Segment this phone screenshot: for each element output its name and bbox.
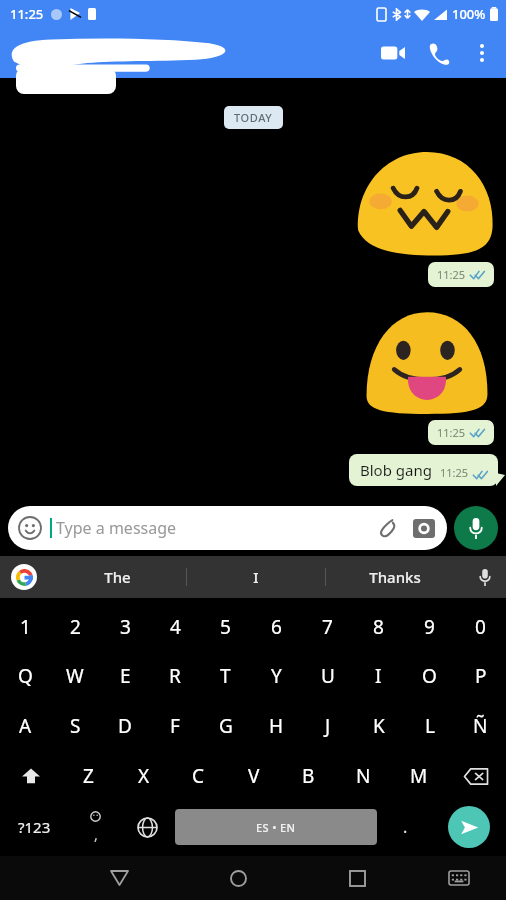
button[interactable]: P bbox=[455, 651, 506, 701]
button[interactable]: X bbox=[116, 751, 171, 801]
staticText: Type a message bbox=[56, 517, 177, 539]
staticText: T bbox=[220, 663, 231, 689]
staticText: I bbox=[375, 663, 382, 689]
button[interactable]: More options bbox=[462, 33, 502, 73]
button[interactable]: T bbox=[200, 651, 251, 701]
button[interactable]: ?123 bbox=[0, 801, 69, 853]
staticText: N bbox=[356, 763, 371, 789]
button[interactable]: TODAY bbox=[234, 110, 273, 125]
button[interactable]: G bbox=[200, 701, 251, 751]
button[interactable]: J bbox=[302, 701, 353, 751]
button[interactable]: Attach bbox=[375, 515, 401, 541]
staticText: U bbox=[321, 663, 335, 689]
staticText: TODAY bbox=[234, 110, 273, 125]
staticText: 8 bbox=[373, 614, 384, 640]
staticText: K bbox=[373, 713, 385, 739]
button[interactable]: Camera bbox=[411, 515, 437, 541]
button[interactable]: Recent apps bbox=[298, 856, 417, 900]
button[interactable]: 1 bbox=[0, 602, 50, 651]
button[interactable]: The bbox=[48, 556, 186, 598]
staticText: J bbox=[325, 713, 331, 739]
button[interactable]: Google bbox=[0, 556, 48, 598]
button[interactable]: Send bbox=[448, 806, 490, 848]
button[interactable]: Voice input bbox=[464, 556, 506, 598]
button[interactable]: 11:25 bbox=[437, 425, 485, 440]
staticText: ES • EN bbox=[256, 820, 296, 835]
button[interactable]: W bbox=[50, 651, 100, 701]
staticText: R bbox=[169, 663, 181, 689]
button[interactable]: E bbox=[100, 651, 150, 701]
staticText: D bbox=[118, 713, 132, 739]
button[interactable]: K bbox=[353, 701, 404, 751]
button[interactable]: 3 bbox=[100, 602, 150, 651]
button[interactable]: 8 bbox=[353, 602, 404, 651]
staticText: H bbox=[269, 713, 284, 739]
button[interactable]: Back bbox=[60, 856, 179, 900]
button[interactable]: Thanks bbox=[326, 556, 464, 598]
button[interactable]: Backspace bbox=[446, 751, 506, 801]
button[interactable]: 9 bbox=[404, 602, 455, 651]
button[interactable]: Shift bbox=[0, 751, 61, 801]
button[interactable]: Video call bbox=[370, 30, 416, 76]
button[interactable]: R bbox=[150, 651, 200, 701]
button[interactable]: Hide keyboard bbox=[417, 856, 500, 900]
button[interactable]: Ñ bbox=[455, 701, 506, 751]
button[interactable]: I bbox=[353, 651, 404, 701]
button[interactable]: Voice message bbox=[454, 506, 498, 550]
staticText: Thanks bbox=[369, 567, 421, 587]
button[interactable]: 2 bbox=[50, 602, 100, 651]
staticText: Q bbox=[18, 663, 33, 689]
button[interactable]: Z bbox=[61, 751, 116, 801]
button[interactable]: 6 bbox=[251, 602, 302, 651]
button[interactable]: Y bbox=[251, 651, 302, 701]
staticText: 0 bbox=[475, 614, 486, 640]
staticText: 7 bbox=[322, 614, 333, 640]
staticText: 11:25 bbox=[437, 425, 466, 440]
button[interactable]: I bbox=[187, 556, 325, 598]
button[interactable]: Blob gang bbox=[360, 460, 488, 480]
button[interactable]: Blob sticker bbox=[364, 309, 490, 415]
staticText: S bbox=[70, 713, 81, 739]
staticText: , bbox=[94, 825, 98, 844]
staticText: 11:25 bbox=[437, 267, 466, 282]
button[interactable]: U bbox=[302, 651, 353, 701]
staticText: V bbox=[248, 763, 260, 789]
button[interactable]: S bbox=[50, 701, 100, 751]
button[interactable]: . bbox=[379, 801, 431, 853]
button[interactable]: B bbox=[281, 751, 336, 801]
button[interactable]: O bbox=[404, 651, 455, 701]
button[interactable]: ES • EN bbox=[175, 809, 377, 845]
button[interactable]: D bbox=[100, 701, 150, 751]
button[interactable]: F bbox=[150, 701, 200, 751]
button[interactable]: A bbox=[0, 701, 50, 751]
button[interactable]: L bbox=[404, 701, 455, 751]
other: Emoji bbox=[18, 516, 42, 540]
button[interactable]: V bbox=[226, 751, 281, 801]
button[interactable]: Call bbox=[416, 30, 462, 76]
button[interactable]: 4 bbox=[150, 602, 200, 651]
staticText: A bbox=[19, 713, 32, 739]
staticText: C bbox=[192, 763, 205, 789]
staticText: W bbox=[66, 663, 84, 689]
staticText: The bbox=[104, 567, 131, 587]
button[interactable]: 5 bbox=[200, 602, 251, 651]
staticText: 3 bbox=[120, 614, 131, 640]
button[interactable]: Home bbox=[179, 856, 298, 900]
button[interactable] bbox=[16, 68, 116, 94]
staticText: Ñ bbox=[473, 713, 488, 739]
staticText: ?123 bbox=[18, 817, 51, 837]
button[interactable]: C bbox=[171, 751, 226, 801]
button[interactable]: 7 bbox=[302, 602, 353, 651]
button[interactable]: Blob sticker bbox=[354, 150, 494, 256]
staticText: Blob gang bbox=[360, 460, 432, 480]
button[interactable]: 0 bbox=[455, 602, 506, 651]
staticText: X bbox=[138, 763, 150, 789]
button[interactable]: Q bbox=[0, 651, 50, 701]
button[interactable]: Emoji bbox=[18, 506, 437, 550]
button[interactable]: N bbox=[336, 751, 391, 801]
button[interactable]: 11:25 bbox=[437, 267, 485, 282]
button[interactable]: H bbox=[251, 701, 302, 751]
button[interactable]: M bbox=[391, 751, 446, 801]
button[interactable]: Emoji and comma bbox=[69, 801, 121, 853]
button[interactable]: Change language bbox=[121, 801, 173, 853]
